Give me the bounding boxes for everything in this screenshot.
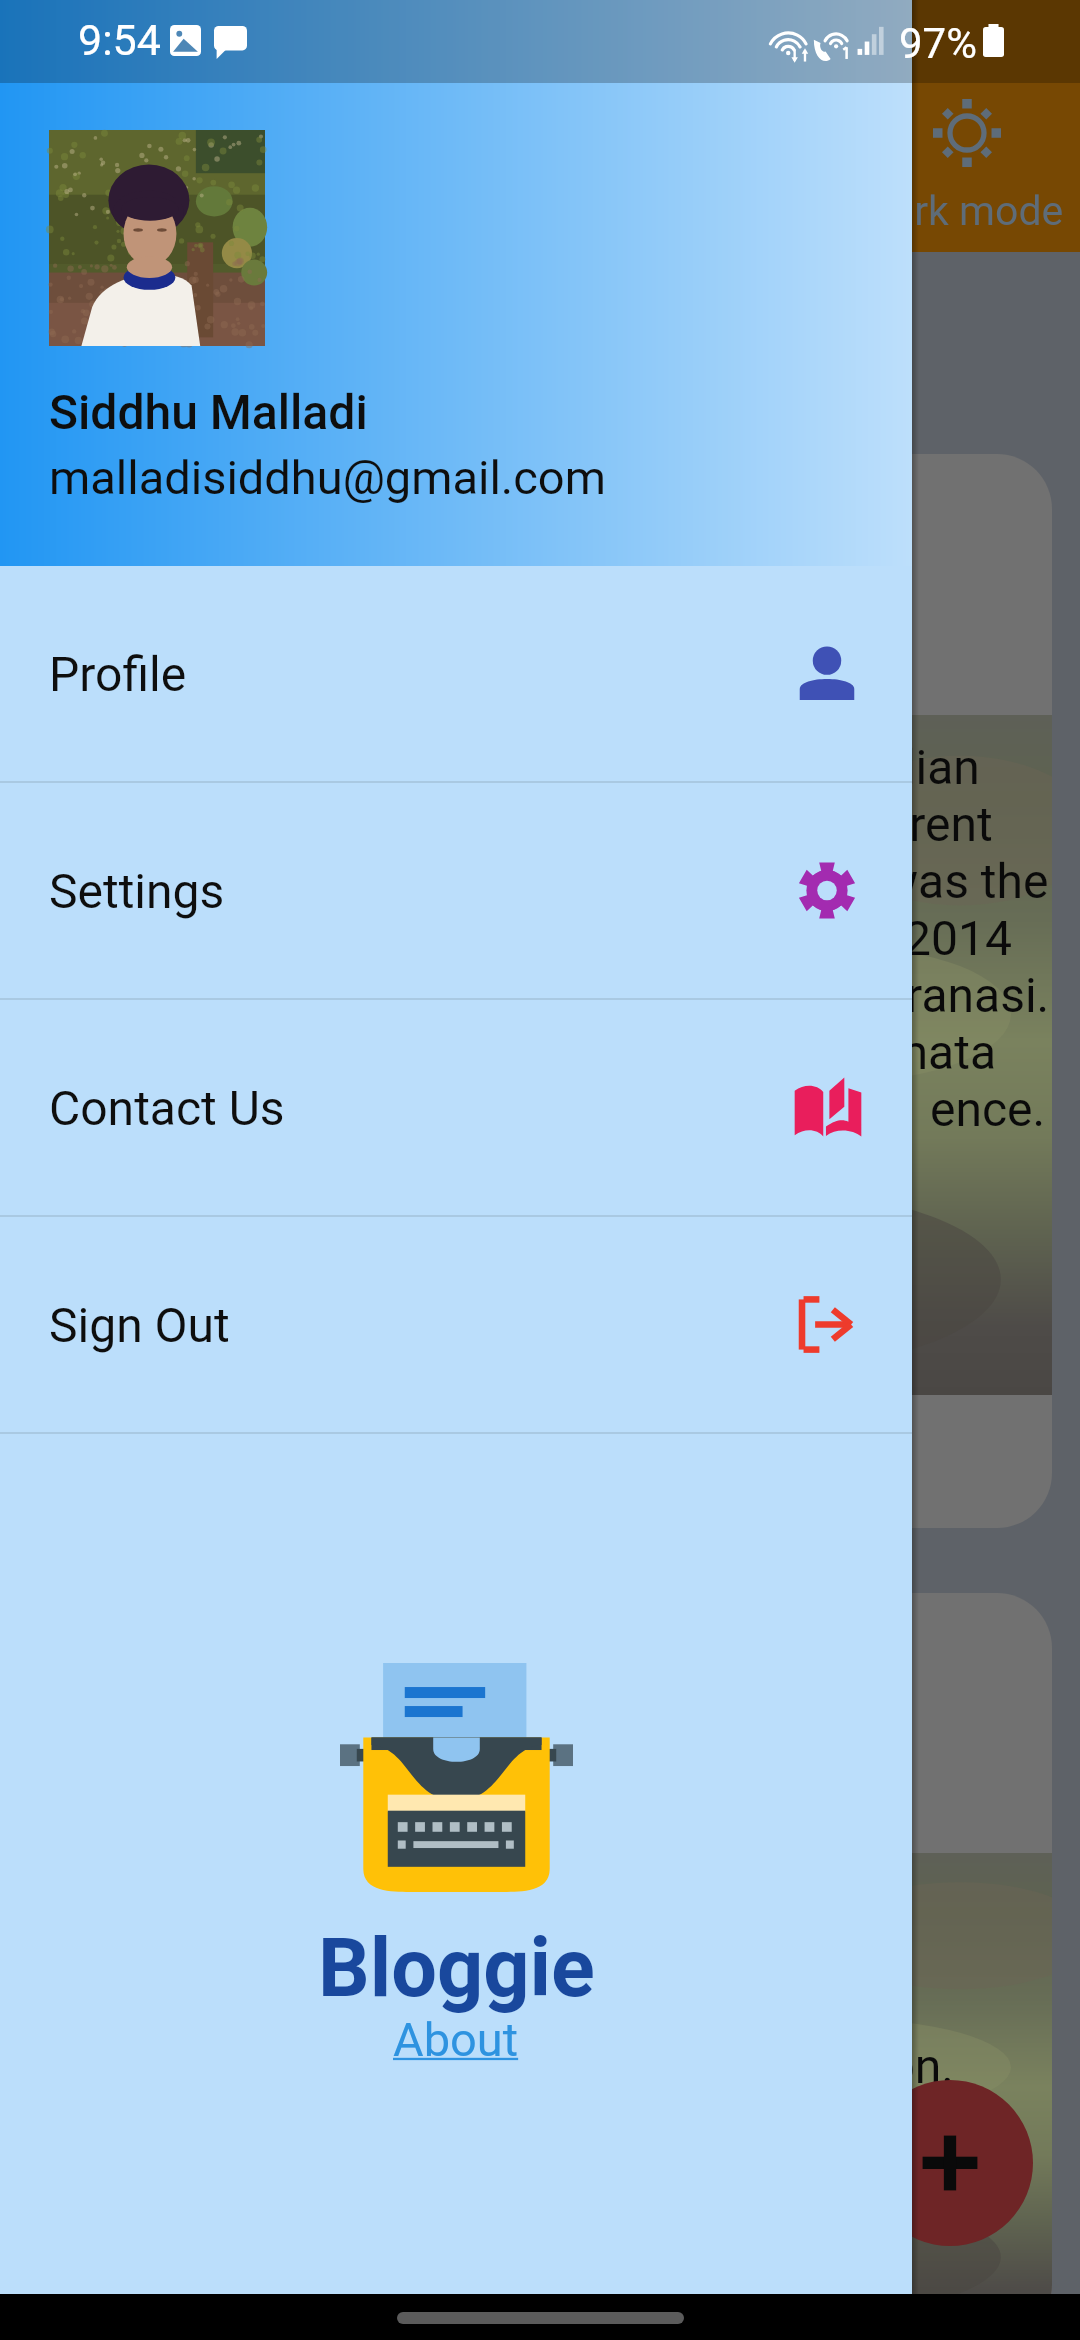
staticText: aranasi. [880, 967, 1050, 1023]
button[interactable]: About [393, 2012, 519, 2067]
staticText: ndian [862, 739, 980, 795]
staticText: malladisiddhu@gmail.com [49, 450, 606, 505]
button[interactable]: ndian [28, 454, 1052, 1528]
button[interactable]: ation. [28, 1593, 1052, 2340]
button[interactable]: Add post [867, 2080, 1033, 2246]
staticText: Bloggie [318, 1921, 595, 2016]
button[interactable]: Toggle dark mode [877, 43, 1057, 223]
staticText: Profile [49, 646, 187, 702]
staticText: Dark mode [865, 187, 1064, 235]
staticText: rrent [893, 796, 993, 852]
staticText: About [393, 2012, 519, 2067]
staticText: ation. [834, 2038, 955, 2094]
button[interactable]: Sign Out [0, 1217, 912, 1432]
staticText: was the [882, 853, 1049, 909]
button[interactable]: Account: Siddhu Malladi [0, 0, 912, 566]
staticText: m 2014 [850, 910, 1012, 966]
staticText: 9:54 [78, 15, 161, 65]
button[interactable]: Settings [0, 783, 912, 998]
staticText: Siddhu Malladi [49, 384, 368, 440]
staticText: 97% [899, 19, 977, 68]
button[interactable]: Profile [0, 566, 912, 781]
staticText: Settings [49, 863, 225, 919]
staticText: Sign Out [49, 1297, 230, 1353]
staticText: ence. [930, 1081, 1046, 1137]
staticText: Contact Us [49, 1080, 285, 1136]
button[interactable]: Contact Us [0, 1000, 912, 1215]
staticText: mata [886, 1024, 997, 1080]
